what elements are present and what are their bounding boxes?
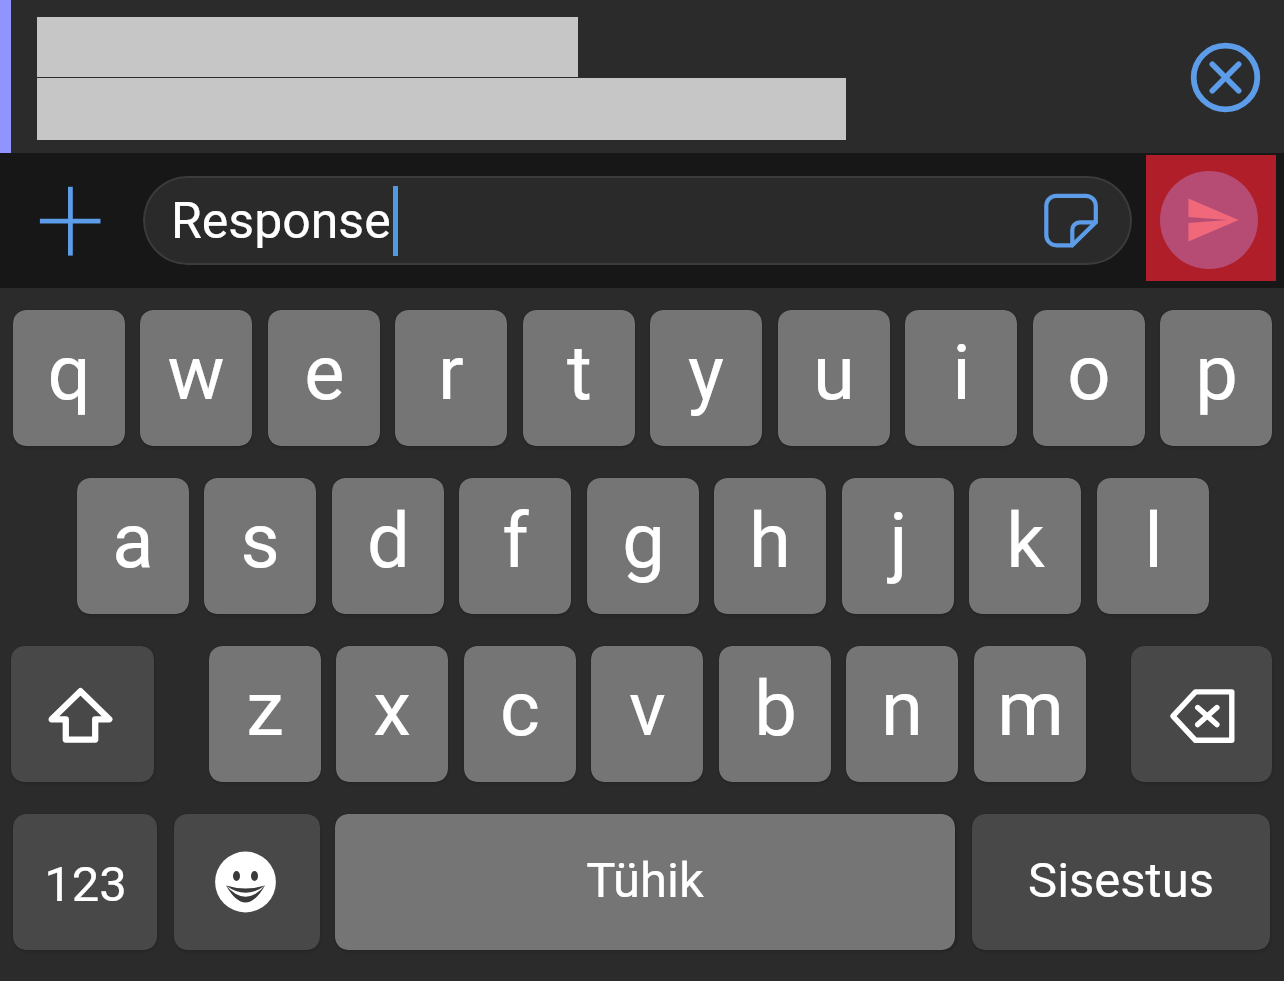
button[interactable]: Emoji xyxy=(174,814,320,950)
staticText: h xyxy=(749,496,791,585)
staticText: b xyxy=(754,664,797,753)
button[interactable]: t xyxy=(523,310,635,446)
button[interactable]: Shift xyxy=(11,646,154,782)
button[interactable]: q xyxy=(13,310,125,446)
staticText: i xyxy=(952,328,971,417)
button[interactable]: n xyxy=(846,646,958,782)
button[interactable]: w xyxy=(140,310,252,446)
button[interactable]: u xyxy=(778,310,890,446)
staticText: n xyxy=(881,664,923,753)
staticText: Response xyxy=(171,192,391,251)
button[interactable]: r xyxy=(395,310,507,446)
button[interactable]: Stickers xyxy=(1040,189,1104,253)
staticText: d xyxy=(367,496,410,585)
staticText: m xyxy=(997,664,1064,753)
button[interactable]: f xyxy=(459,478,571,614)
button[interactable]: k xyxy=(969,478,1081,614)
button[interactable]: b xyxy=(719,646,831,782)
button[interactable]: g xyxy=(587,478,699,614)
staticText: a xyxy=(112,496,154,585)
staticText: s xyxy=(240,496,280,585)
staticText: o xyxy=(1067,328,1111,417)
button[interactable]: h xyxy=(714,478,826,614)
button[interactable]: a xyxy=(77,478,189,614)
button[interactable]: p xyxy=(1160,310,1272,446)
staticText: t xyxy=(567,328,592,417)
staticText: Sisestus xyxy=(1028,852,1214,909)
staticText: v xyxy=(629,664,666,753)
button[interactable]: j xyxy=(842,478,954,614)
button[interactable]: Tühik xyxy=(335,814,955,950)
button[interactable]: Send xyxy=(1146,155,1276,281)
staticText: p xyxy=(1195,328,1238,417)
button[interactable]: o xyxy=(1033,310,1145,446)
button[interactable]: d xyxy=(332,478,444,614)
button[interactable]: c xyxy=(464,646,576,782)
staticText: k xyxy=(1006,496,1045,585)
button[interactable]: Response xyxy=(143,176,1132,265)
button[interactable]: Attach xyxy=(24,176,114,266)
button[interactable]: z xyxy=(209,646,321,782)
button[interactable]: l xyxy=(1097,478,1209,614)
staticText: u xyxy=(813,328,855,417)
staticText: l xyxy=(1144,496,1163,585)
staticText: c xyxy=(500,664,540,753)
staticText: w xyxy=(167,328,225,417)
staticText: x xyxy=(373,664,411,753)
button[interactable]: i xyxy=(905,310,1017,446)
button[interactable]: v xyxy=(591,646,703,782)
button[interactable]: m xyxy=(974,646,1086,782)
button[interactable]: y xyxy=(650,310,762,446)
button[interactable]: Sisestus xyxy=(972,814,1270,950)
staticText: g xyxy=(622,496,665,585)
staticText: Tühik xyxy=(586,852,704,909)
staticText: f xyxy=(502,496,529,585)
button[interactable]: s xyxy=(204,478,316,614)
button[interactable]: x xyxy=(336,646,448,782)
staticText: j xyxy=(889,496,908,585)
staticText: q xyxy=(47,328,91,417)
staticText: r xyxy=(438,328,464,417)
staticText: 123 xyxy=(44,856,127,913)
button[interactable]: e xyxy=(268,310,380,446)
button[interactable]: 123 xyxy=(13,814,157,950)
staticText: z xyxy=(246,664,284,753)
button[interactable]: Close xyxy=(1190,42,1261,113)
staticText: e xyxy=(304,328,345,417)
staticText: y xyxy=(688,328,724,417)
button[interactable]: Backspace xyxy=(1131,646,1272,782)
